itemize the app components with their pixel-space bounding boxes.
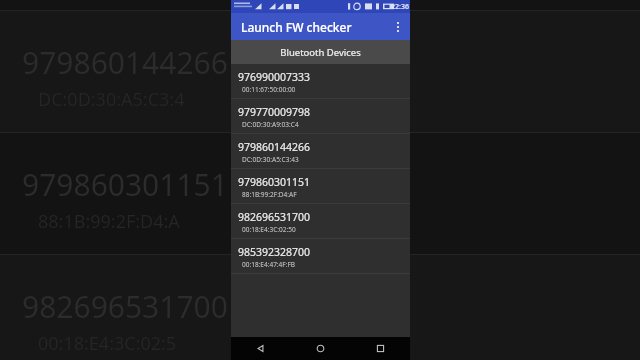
button[interactable]: More options [386,13,410,40]
staticText: 00:18:E4:3C:02:50 [242,225,296,234]
button[interactable]: Back [231,337,290,360]
staticText: 982696531700 [238,210,311,224]
staticText: 982696531700 [22,286,228,327]
staticText: 979860301151 [22,164,228,205]
button[interactable]: 985392328700 [231,239,410,274]
staticText: 88:1B:99:2F:D4:A [38,209,180,234]
button[interactable]: 979860144266 [231,134,410,169]
staticText: 00:11:67:50:00:00 [242,85,296,94]
button[interactable]: 976990007333 [231,64,410,99]
staticText: 979860144266 [238,140,311,154]
staticText: DC:0D:30:A9:03:C4 [242,120,299,129]
button[interactable]: Recents [350,337,410,360]
staticText: DC:0D:30:A5:C3:43 [242,155,299,164]
staticText: 976990007333 [238,70,311,84]
staticText: 88:1B:99:2F:D4:AF [242,190,297,199]
staticText: 985392328700 [238,245,311,259]
staticText: Bluetooth Devices [280,46,361,59]
button[interactable]: 982696531700 [231,204,410,239]
staticText: 22:36 [391,2,409,12]
staticText: 00:18:E4:47:4F:FB [242,260,296,269]
button[interactable]: Home [290,337,350,360]
staticText: 979770009798 [238,105,311,119]
staticText: DC:0D:30:A5:C3:4 [38,87,185,112]
button[interactable]: Bluetooth Devices [231,40,410,64]
staticText: Launch FW checker [241,19,352,35]
button[interactable]: 979860301151 [231,169,410,204]
button[interactable]: 979770009798 [231,99,410,134]
staticText: 979860301151 [238,175,311,189]
staticText: 979860144266 [22,42,228,83]
staticText: 00:18:E4:3C:02:5 [38,331,177,356]
